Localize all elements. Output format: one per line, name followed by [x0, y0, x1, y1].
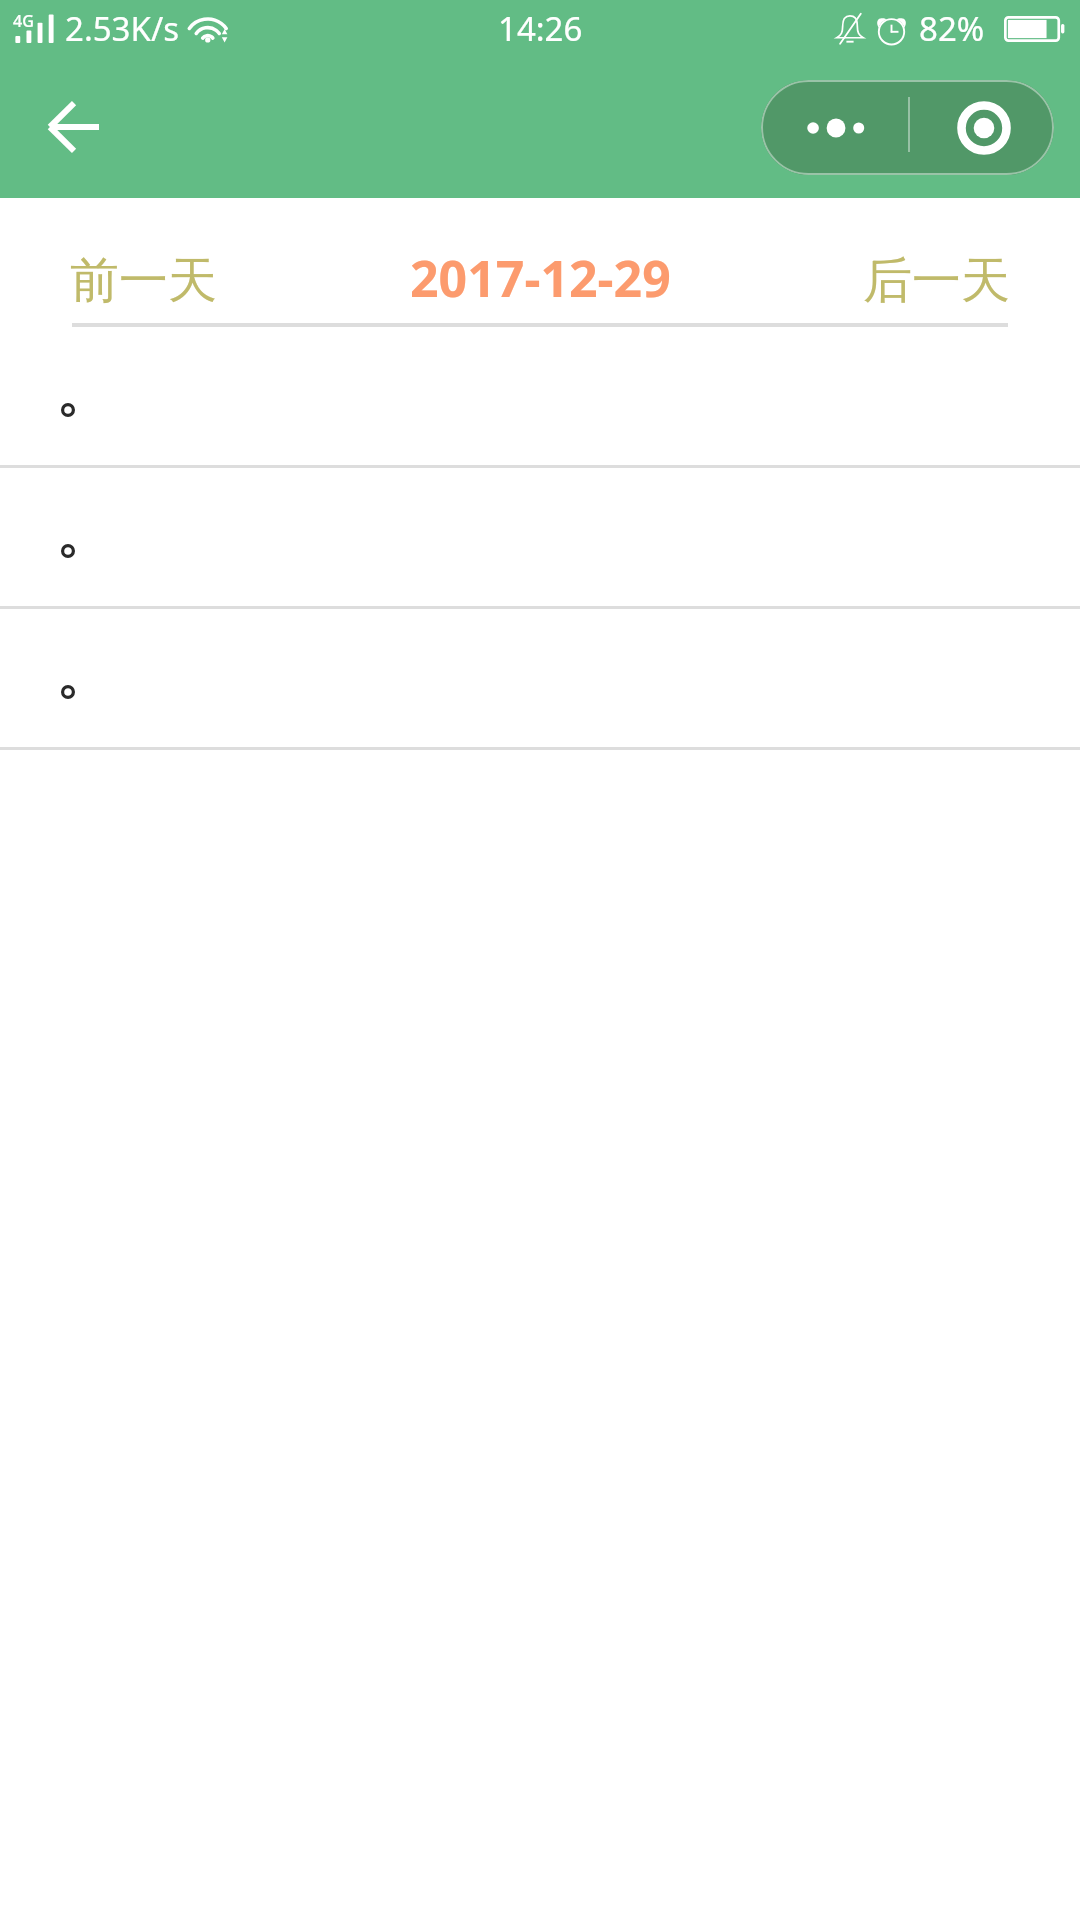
staticText: 前一天 [70, 250, 217, 312]
button[interactable]: Entry 1 [0, 327, 1080, 468]
button[interactable]: 后一天 [863, 250, 1010, 312]
button[interactable]: More options [761, 80, 908, 175]
button[interactable]: Entry 2 [0, 468, 1080, 609]
staticText: 2017-12-29 [410, 244, 671, 312]
button[interactable]: 2017-12-29 [410, 244, 671, 312]
button[interactable]: Entry 3 [0, 609, 1080, 750]
button[interactable]: Back [21, 75, 125, 179]
staticText: 82% [919, 6, 985, 51]
staticText: 后一天 [863, 250, 1010, 312]
button[interactable]: 前一天 [70, 250, 217, 312]
staticText: 14:26 [498, 6, 583, 51]
button[interactable]: Close mini program [910, 80, 1054, 175]
staticText: 2.53K/s [65, 6, 179, 51]
staticText: 4G [13, 10, 34, 32]
